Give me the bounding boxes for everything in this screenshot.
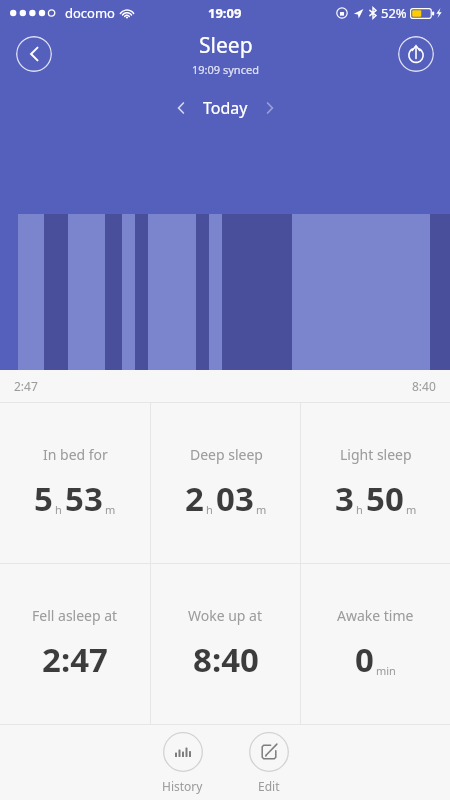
staticText: Sleep <box>199 31 253 60</box>
staticText: m <box>105 502 116 517</box>
staticText: Deep sleep <box>190 445 263 464</box>
button[interactable]: Light sleep <box>301 403 450 563</box>
staticText: Awake time <box>337 606 414 625</box>
staticText: h <box>206 502 213 517</box>
staticText: Today <box>203 97 248 119</box>
staticText: 5 <box>34 476 53 521</box>
staticText: 3 <box>335 476 354 521</box>
staticText: h <box>356 502 363 517</box>
button[interactable]: Sync <box>398 36 434 72</box>
staticText: 2:47 <box>14 378 38 394</box>
staticText: 03 <box>216 476 254 521</box>
button[interactable]: Fell asleep at <box>0 564 150 724</box>
staticText: History <box>162 778 203 794</box>
staticText: min <box>376 663 396 678</box>
staticText: Woke up at <box>188 606 263 625</box>
staticText: docomo <box>65 4 115 22</box>
staticText: m <box>256 502 267 517</box>
staticText: Edit <box>258 778 280 794</box>
staticText: 19:09 <box>208 4 242 22</box>
staticText: Fell asleep at <box>32 606 118 625</box>
button[interactable]: In bed for <box>0 403 150 563</box>
button[interactable]: History <box>156 732 209 794</box>
staticText: 50 <box>366 476 404 521</box>
button[interactable]: Back <box>16 36 52 72</box>
staticText: 8:40 <box>193 637 259 682</box>
staticText: 0 <box>355 637 374 682</box>
staticText: Light sleep <box>340 445 412 464</box>
staticText: 52% <box>381 4 407 22</box>
staticText: m <box>406 502 417 517</box>
staticText: 2 <box>185 476 204 521</box>
staticText: 8:40 <box>412 378 436 394</box>
button[interactable]: Woke up at <box>151 564 300 724</box>
staticText: In bed for <box>43 445 108 464</box>
staticText: 53 <box>65 476 103 521</box>
button[interactable]: Today <box>173 97 278 119</box>
button[interactable]: Edit <box>243 732 295 794</box>
button[interactable]: Deep sleep <box>151 403 300 563</box>
staticText: 19:09 synced <box>192 62 259 77</box>
button[interactable]: Awake time <box>301 564 450 724</box>
staticText: 2:47 <box>42 637 108 682</box>
staticText: h <box>55 502 62 517</box>
